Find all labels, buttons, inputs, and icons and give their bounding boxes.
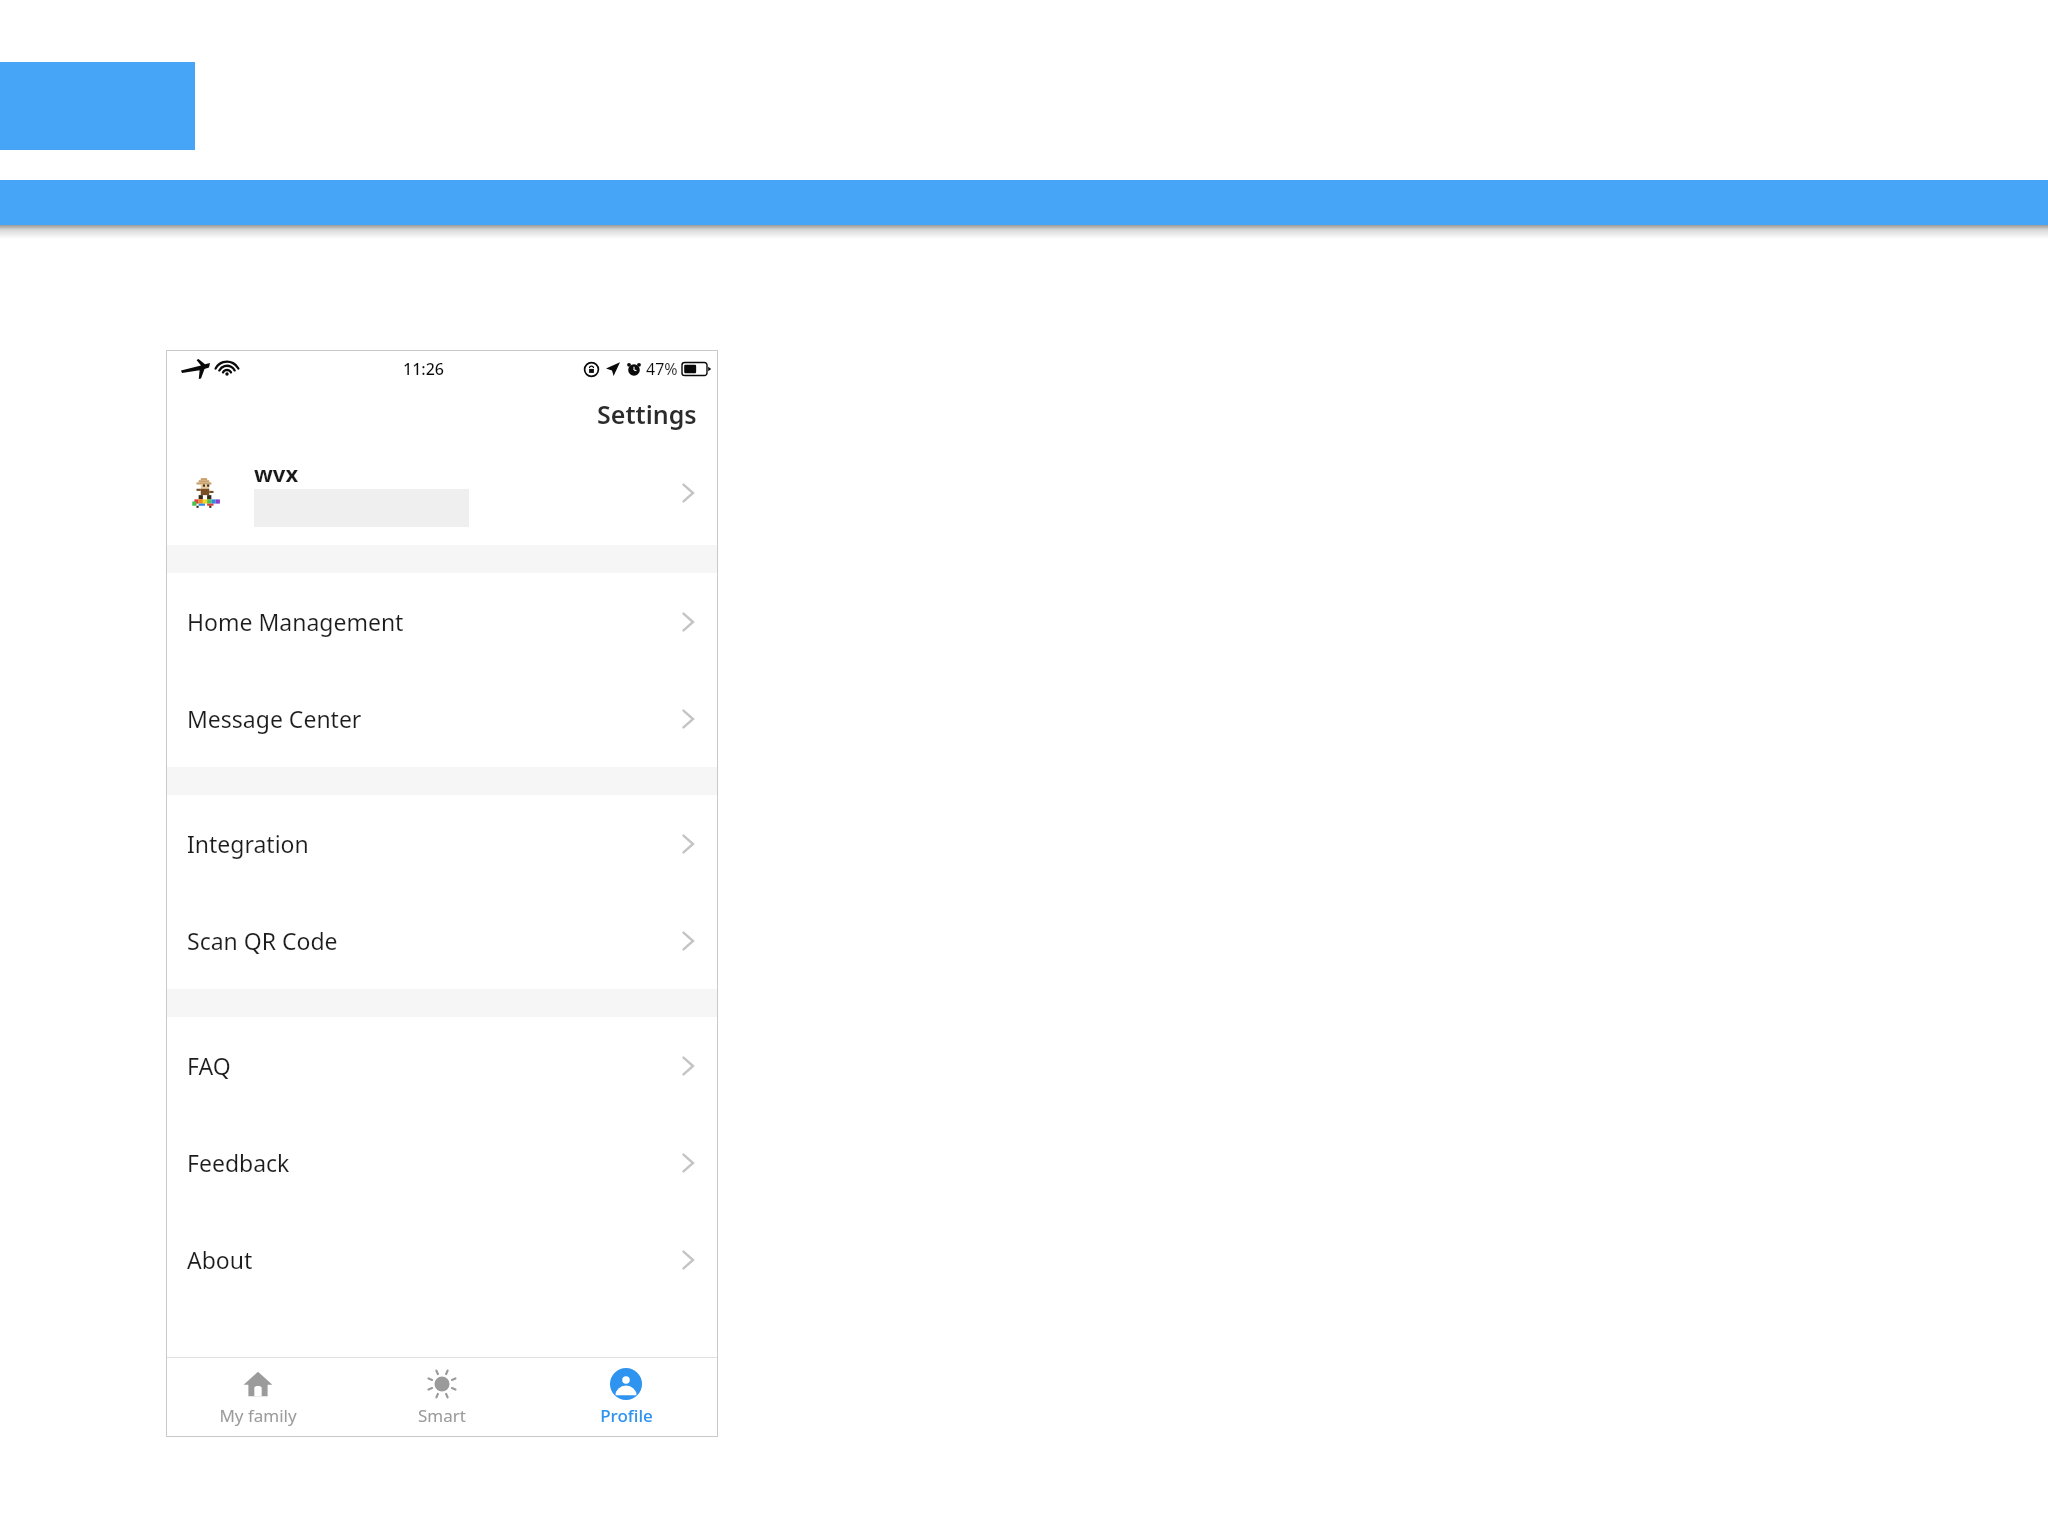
staticText: FAQ xyxy=(187,1050,679,1081)
staticText: Settings xyxy=(597,397,697,431)
staticText: 11:26 xyxy=(403,358,444,380)
staticText: Integration xyxy=(187,828,679,859)
staticText: Message Center xyxy=(187,703,679,734)
staticText: Profile xyxy=(600,1404,653,1427)
staticText: Home Management xyxy=(187,606,679,637)
staticText: Scan QR Code xyxy=(187,925,679,956)
button[interactable]: My family xyxy=(166,1358,350,1437)
button[interactable]: Scan QR Code xyxy=(166,892,718,989)
staticText: About xyxy=(187,1244,679,1275)
button[interactable]: FAQ xyxy=(166,1017,718,1114)
staticText: My family xyxy=(219,1404,297,1427)
staticText: Smart xyxy=(418,1404,466,1427)
button[interactable]: Feedback xyxy=(166,1114,718,1211)
button[interactable]: Profile xyxy=(534,1358,718,1437)
button[interactable]: About xyxy=(166,1211,718,1308)
staticText: Feedback xyxy=(187,1147,679,1178)
button[interactable]: Smart xyxy=(350,1358,534,1437)
button[interactable]: Integration xyxy=(166,795,718,892)
staticText: wvx xyxy=(254,458,299,488)
staticText: 47% xyxy=(646,358,678,380)
button[interactable]: wvx xyxy=(166,440,718,545)
button[interactable]: Home Management xyxy=(166,573,718,670)
button[interactable]: Message Center xyxy=(166,670,718,767)
